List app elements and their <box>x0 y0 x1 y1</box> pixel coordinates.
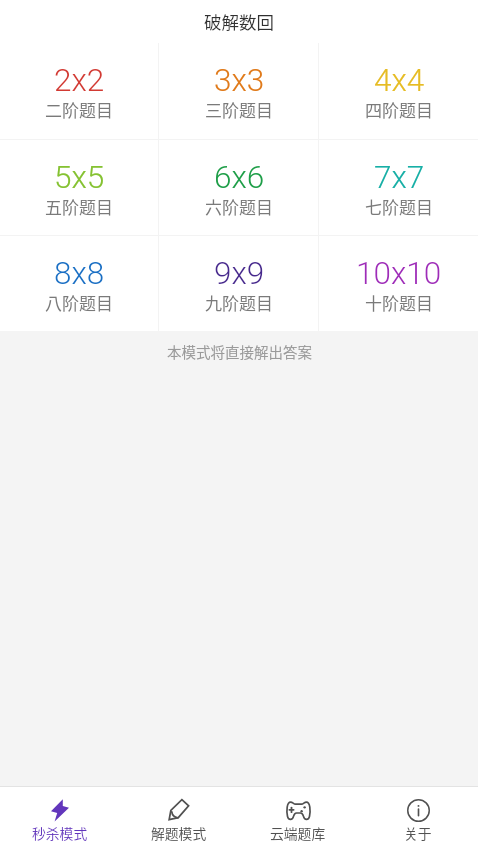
button[interactable]: 9x9 <box>159 236 318 331</box>
button[interactable]: Solve mode <box>119 787 238 850</box>
staticText: 破解数回 <box>204 9 274 34</box>
staticText: 关于 <box>404 823 432 843</box>
staticText: 本模式将直接解出答案 <box>167 341 312 362</box>
button[interactable]: 3x3 <box>159 43 318 139</box>
staticText: 三阶题目 <box>205 97 273 122</box>
staticText: 10x10 <box>356 255 442 292</box>
staticText: 云端题库 <box>270 823 326 843</box>
staticText: 五阶题目 <box>45 194 113 219</box>
button[interactable]: 8x8 <box>0 236 158 331</box>
button[interactable]: Cloud puzzle library <box>238 787 358 850</box>
button[interactable]: 10x10 <box>319 236 478 331</box>
staticText: 六阶题目 <box>205 194 273 219</box>
staticText: 3x3 <box>214 62 265 99</box>
staticText: 七阶题目 <box>365 194 433 219</box>
button[interactable]: 7x7 <box>319 140 478 235</box>
staticText: 十阶题目 <box>365 290 433 315</box>
staticText: 8x8 <box>54 255 105 292</box>
button[interactable]: 4x4 <box>319 43 478 139</box>
staticText: 九阶题目 <box>205 290 273 315</box>
button[interactable]: 2x2 <box>0 43 158 139</box>
staticText: 秒杀模式 <box>32 823 88 843</box>
button[interactable]: About <box>358 787 478 850</box>
staticText: 2x2 <box>54 62 105 99</box>
staticText: 6x6 <box>214 159 265 196</box>
staticText: 7x7 <box>374 159 425 196</box>
staticText: 解题模式 <box>151 823 207 843</box>
staticText: 5x5 <box>54 159 105 196</box>
staticText: 二阶题目 <box>45 97 113 122</box>
staticText: 4x4 <box>374 62 425 99</box>
button[interactable]: 6x6 <box>159 140 318 235</box>
staticText: 八阶题目 <box>45 290 113 315</box>
button[interactable]: Lightning fast mode <box>0 787 119 850</box>
staticText: 9x9 <box>214 255 265 292</box>
button[interactable]: 5x5 <box>0 140 158 235</box>
staticText: 四阶题目 <box>365 97 433 122</box>
